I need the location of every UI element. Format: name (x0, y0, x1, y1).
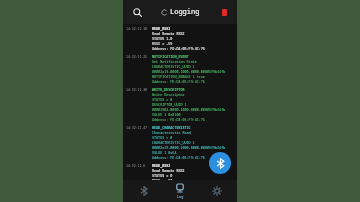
staticText: 14:32:11.25 (126, 55, 150, 59)
staticText: Write Descriptor (152, 92, 185, 97)
staticText: Address: FD:D4:05:F9:4C:76 (152, 79, 205, 84)
staticText: STATUS = 0 (152, 135, 173, 140)
staticText: 14:32:11.38 (126, 88, 150, 92)
staticText: 00002a19-0000-1000-8000-00805f9b34fb (152, 69, 226, 74)
button[interactable]: Logger (164, 180, 196, 202)
staticText: READ_RSSI (152, 163, 171, 168)
staticText: CHARACTERISTIC_UUID 1 (152, 140, 195, 145)
staticText: Logging (170, 7, 200, 17)
button[interactable]: 14:32:11.6 (126, 163, 234, 180)
staticText: Address: FD:D4:05:F9:4C:76 (152, 155, 205, 160)
staticText: VALUE 1 0x64 (152, 150, 177, 155)
button[interactable]: 14:32:11.25 (126, 54, 234, 84)
staticText: Address: FD:D4:05:F9:4C:76 (152, 117, 205, 122)
staticText: Log (177, 194, 184, 199)
staticText: 14:32:11.18 (126, 27, 150, 31)
staticText: WRITE_DESCRIPTOR (152, 87, 185, 92)
staticText: READ_CHARACTERISTIC (152, 125, 191, 130)
staticText: NOTIFICATION_EVENT (152, 54, 189, 59)
staticText: Get Notification State (152, 59, 197, 64)
staticText: Read Remote RSSI (152, 168, 185, 173)
button[interactable]: Settings (201, 180, 233, 202)
staticText: Characteristic Read (152, 130, 191, 135)
staticText: RSSI = -59 (152, 41, 173, 46)
staticText: RSSI = -60 (152, 178, 173, 180)
staticText: STATUS = 0 (152, 173, 173, 178)
staticText: READ_RSSI (152, 26, 171, 31)
staticText: 00002a19-0000-1000-8000-00805f9b34fb (152, 145, 226, 150)
staticText: VALUE 1 0x0100 (152, 112, 181, 117)
button[interactable]: 14:32:11.18 (126, 26, 234, 51)
button[interactable]: Search (129, 4, 145, 20)
staticText: STATUS = 0 (152, 97, 173, 102)
staticText: 14:32:11.47 (126, 126, 150, 130)
staticText: Read Remote RSSI (152, 31, 185, 36)
button[interactable]: Delete log (217, 5, 231, 19)
staticText: CHARACTERISTIC_UUID 1 (152, 64, 195, 69)
staticText: DESCRIPTOR_UUID 1 (152, 102, 187, 107)
staticText: Address: FD:D4:05:F9:4C:76 (152, 46, 205, 51)
button[interactable]: Scan for devices (209, 152, 231, 174)
button[interactable]: 14:32:11.38 (126, 87, 234, 122)
staticText: NOTIFICATION_ENABLE 1 true (152, 74, 205, 79)
button[interactable]: 14:32:11.47 (126, 125, 234, 160)
button[interactable]: Scanner (128, 180, 160, 202)
staticText: 14:32:11.6 (126, 164, 150, 168)
staticText: STATUS 1-0 (152, 36, 173, 41)
staticText: 00002902-0000-1000-8000-00805f9b34fb (152, 107, 226, 112)
